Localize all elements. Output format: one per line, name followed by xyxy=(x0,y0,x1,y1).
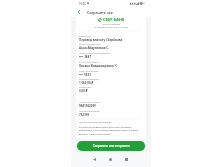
staticText: ФИО отправителя xyxy=(79,42,101,45)
staticText: Сохранить чек xyxy=(87,10,113,15)
staticText: 0,00 ₽ xyxy=(79,89,88,93)
staticText: 752399 xyxy=(79,113,90,117)
staticText: 9841562039 xyxy=(79,104,96,108)
button[interactable]: Home xyxy=(104,153,116,165)
staticText: Анна Абдулловна С. xyxy=(79,46,110,50)
staticText: Оксана Владимировна Ч. xyxy=(79,64,118,68)
button[interactable]: Recents xyxy=(120,153,132,165)
staticText: Перевод клиенту Сбербанка xyxy=(79,38,123,42)
staticText: Если вы отправили деньги не тому человек… xyxy=(79,125,142,136)
staticText: 10:05 xyxy=(79,2,86,6)
staticText: Код авторизации xyxy=(79,109,100,112)
staticText: Комиссия xyxy=(79,85,91,88)
button[interactable]: Back xyxy=(71,7,87,17)
staticText: СБЕР БАНК xyxy=(103,17,125,22)
staticText: Чек по операции xyxy=(76,23,146,26)
staticText: 13 сентября 2024 10:02:14 (МСК) xyxy=(76,26,146,29)
staticText: Счёт получателя xyxy=(79,69,99,72)
staticText: Сохранить или отправить xyxy=(93,144,130,148)
button[interactable]: Back xyxy=(88,153,100,165)
staticText: Дополнительная информация xyxy=(79,121,112,124)
staticText: •••• 5521 xyxy=(79,73,91,77)
staticText: Сумма перевода xyxy=(79,77,99,80)
staticText: Операция xyxy=(79,34,91,37)
staticText: Номер карты отправителя xyxy=(79,51,111,54)
staticText: 1 560,00 ₽ xyxy=(79,81,94,85)
button[interactable]: Сохранить или отправить xyxy=(77,141,145,151)
staticText: Номер документа xyxy=(79,100,101,103)
staticText: ФИО получателя xyxy=(79,60,99,63)
staticText: •••• 3847 xyxy=(79,55,91,59)
